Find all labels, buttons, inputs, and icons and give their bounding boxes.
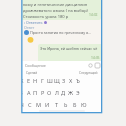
staticText: Е: [27, 77, 31, 85]
staticText: О: [47, 89, 52, 97]
staticText: К: [22, 77, 24, 85]
button[interactable]: Camera: [94, 62, 101, 69]
button[interactable]: К: [22, 75, 25, 87]
button[interactable]: Ю: [79, 99, 88, 111]
staticText: 14:35: [91, 55, 100, 59]
staticText: Р: [41, 89, 45, 97]
staticText: А: [27, 89, 31, 97]
staticText: Ч: [22, 101, 24, 109]
staticText: В: [22, 89, 23, 97]
button[interactable]: Это Ирина, ей шобню сейчас чё: [38, 44, 102, 61]
staticText: Просто занятия по греческому я...: [30, 30, 92, 35]
button[interactable]: Л: [53, 87, 60, 99]
button[interactable]: Б: [70, 99, 79, 111]
button[interactable]: Attach file: [87, 62, 94, 69]
staticText: Ь: [64, 101, 68, 109]
staticText: Ответ: [24, 25, 35, 30]
staticText: Сообщение: [25, 63, 46, 68]
button[interactable]: Г: [39, 75, 46, 87]
button[interactable]: Э: [74, 87, 81, 99]
button[interactable]: И: [43, 99, 52, 111]
button[interactable]: П: [32, 87, 39, 99]
staticText: Б: [73, 101, 77, 109]
staticText: Сделай: [26, 71, 38, 75]
button[interactable]: Т: [52, 99, 61, 111]
button[interactable]: кому и генетические дисциплин: [22, 0, 101, 20]
staticText: кому и генетические дисциплин: [23, 2, 88, 8]
staticText: ‹ Ответить: [24, 20, 43, 25]
staticText: Л: [55, 89, 59, 97]
button[interactable]: Ч: [22, 99, 26, 111]
staticText: Ж: [68, 89, 74, 97]
button[interactable]: М: [34, 99, 43, 111]
button[interactable]: Е: [25, 75, 32, 87]
button[interactable]: Д: [60, 87, 67, 99]
staticText: Т: [55, 101, 59, 109]
staticText: С: [28, 101, 32, 109]
staticText: Г: [41, 77, 44, 85]
button[interactable]: Р: [39, 87, 46, 99]
button[interactable]: С: [26, 99, 34, 111]
staticText: З: [62, 77, 66, 85]
staticText: Х: [69, 77, 73, 85]
button[interactable]: Х: [67, 75, 74, 87]
staticText: Э: [76, 89, 80, 97]
button[interactable]: О: [46, 87, 53, 99]
staticText: Ъ: [76, 77, 80, 85]
staticText: Н: [33, 77, 38, 85]
button[interactable]: Щ: [53, 75, 60, 87]
button[interactable]: ‹ Ответить: [24, 20, 47, 25]
button[interactable]: З: [60, 75, 67, 87]
button[interactable]: Ь: [61, 99, 70, 111]
staticText: Щ: [54, 77, 60, 85]
button[interactable]: А: [25, 87, 32, 99]
staticText: дрожжеватого языка ( на выбор): [23, 8, 88, 14]
button[interactable]: Ш: [46, 75, 53, 87]
staticText: П: [33, 89, 38, 97]
staticText: Ю: [81, 101, 87, 109]
button[interactable]: В: [22, 87, 25, 99]
staticText: Следующий: [79, 71, 98, 75]
staticText: И: [45, 101, 50, 109]
staticText: Стоимость урока 180 р: [23, 14, 69, 20]
button[interactable]: Н: [32, 75, 39, 87]
staticText: 14:32: [89, 12, 98, 16]
button[interactable]: Ъ: [74, 75, 81, 87]
staticText: М: [36, 101, 42, 109]
staticText: Д: [61, 89, 66, 97]
staticText: Ш: [47, 77, 53, 85]
button[interactable]: Ж: [67, 87, 74, 99]
staticText: Это Ирина, ей шобню сейчас чё: [40, 46, 98, 51]
